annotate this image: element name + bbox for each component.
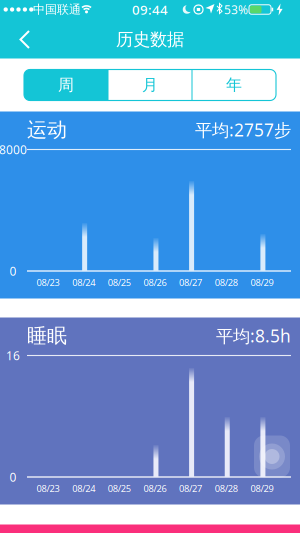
staticText: 53% [224, 1, 248, 17]
staticText: 08/27 [179, 276, 202, 289]
staticText: 08/29 [250, 482, 273, 495]
staticText: 月 [142, 75, 158, 95]
staticText: 08/24 [72, 482, 95, 495]
staticText: 平均:2757步 [195, 118, 291, 141]
staticText: 睡眠 [27, 323, 67, 348]
staticText: 08/25 [108, 482, 131, 495]
staticText: 16 [6, 347, 20, 363]
staticText: 08/26 [143, 276, 166, 289]
staticText: 年 [226, 75, 242, 95]
staticText: 08/23 [36, 482, 59, 495]
button[interactable]: 返回 [11, 27, 41, 51]
staticText: 8000 [0, 141, 27, 157]
button[interactable]: 周 [24, 69, 108, 100]
staticText: 0 [9, 263, 16, 279]
staticText: 0 [9, 469, 16, 485]
staticText: 08/25 [108, 276, 131, 289]
staticText: 08/27 [179, 482, 202, 495]
staticText: 08/26 [143, 482, 166, 495]
button[interactable]: 悬浮球 [254, 435, 290, 477]
button[interactable]: 年 [192, 69, 276, 100]
staticText: 周 [58, 75, 74, 95]
button[interactable]: 月 [108, 69, 192, 100]
staticText: 08/29 [250, 276, 273, 289]
staticText: 09:44 [132, 1, 168, 18]
staticText: 历史数据 [116, 29, 184, 50]
staticText: 08/23 [36, 276, 59, 289]
staticText: 运动 [27, 117, 67, 142]
staticText: 平均:8.5h [216, 324, 291, 347]
staticText: 08/28 [215, 276, 238, 289]
staticText: 中国联通 [33, 2, 81, 17]
staticText: 08/24 [72, 276, 95, 289]
staticText: 08/28 [215, 482, 238, 495]
